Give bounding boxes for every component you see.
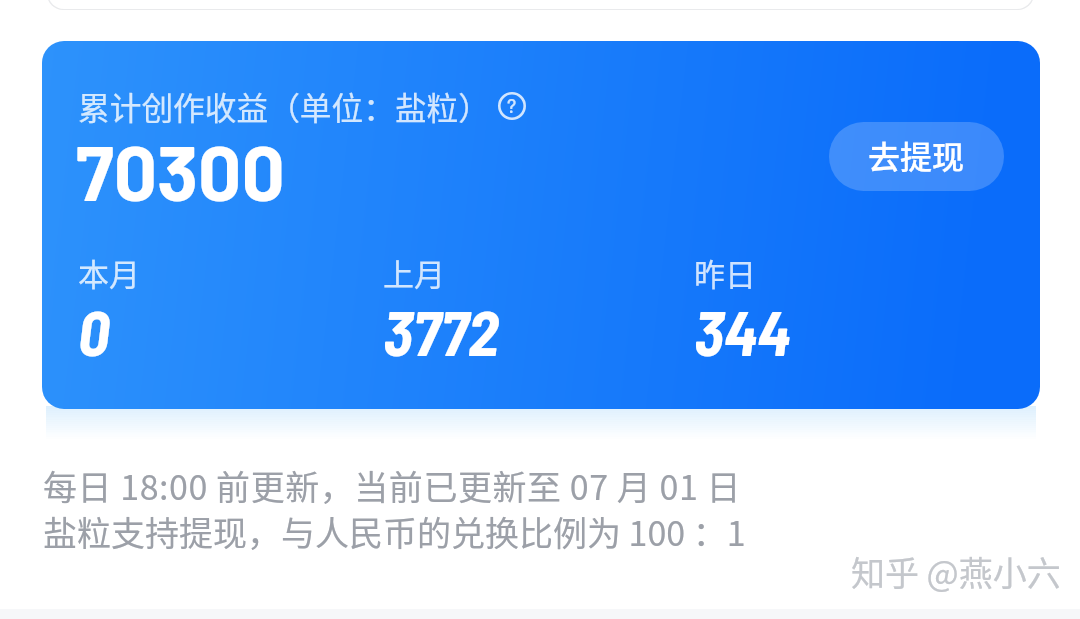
staticText: 累计创作收益（单位：盐粒）: [78, 83, 490, 129]
button[interactable]: 去提现: [829, 122, 1004, 191]
button[interactable]: 上月: [383, 250, 643, 360]
staticText: 3772: [383, 293, 499, 369]
staticText: 70300: [76, 125, 285, 216]
staticText: 去提现: [868, 132, 965, 178]
staticText: 知乎 @燕小六: [851, 547, 1061, 596]
button[interactable]: 说明: [494, 88, 530, 124]
staticText: 每日 18:00 前更新，当前已更新至 07 月 01 日: [43, 461, 742, 510]
staticText: 上月: [383, 250, 445, 295]
button[interactable]: 昨日: [694, 250, 954, 360]
staticText: 昨日: [694, 250, 756, 295]
staticText: 盐粒支持提现，与人民币的兑换比例为 100 ：1: [43, 507, 746, 556]
staticText: 本月: [78, 250, 140, 295]
staticText: 344: [694, 293, 791, 369]
staticText: 0: [78, 293, 110, 369]
staticText: ?: [507, 94, 517, 117]
button[interactable]: 本月: [78, 250, 338, 360]
